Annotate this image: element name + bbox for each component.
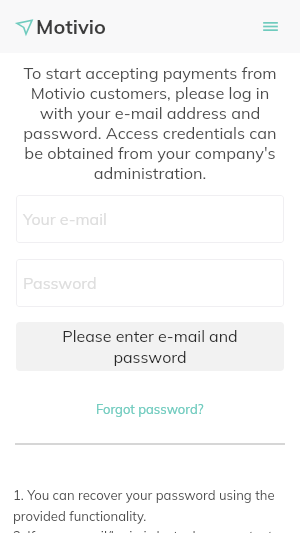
button[interactable]: Please enter e-mail and password bbox=[16, 322, 284, 371]
staticText: 2. If your e-mail/login is lost, please … bbox=[13, 528, 290, 533]
button[interactable]: Open menu bbox=[248, 8, 300, 45]
staticText: Password bbox=[23, 273, 97, 293]
button[interactable]: Your e-mail bbox=[16, 195, 284, 243]
staticText: Your e-mail bbox=[23, 209, 107, 229]
button[interactable]: Motivio bbox=[0, 8, 114, 45]
button[interactable]: Password bbox=[16, 259, 284, 307]
staticText: Please enter e-mail and password bbox=[55, 326, 245, 367]
staticText: Motivio bbox=[36, 14, 106, 39]
button[interactable]: Forgot password? bbox=[84, 397, 216, 421]
staticText: To start accepting payments from Motivio… bbox=[16, 63, 284, 183]
staticText: 1. You can recover your password using t… bbox=[13, 487, 290, 524]
